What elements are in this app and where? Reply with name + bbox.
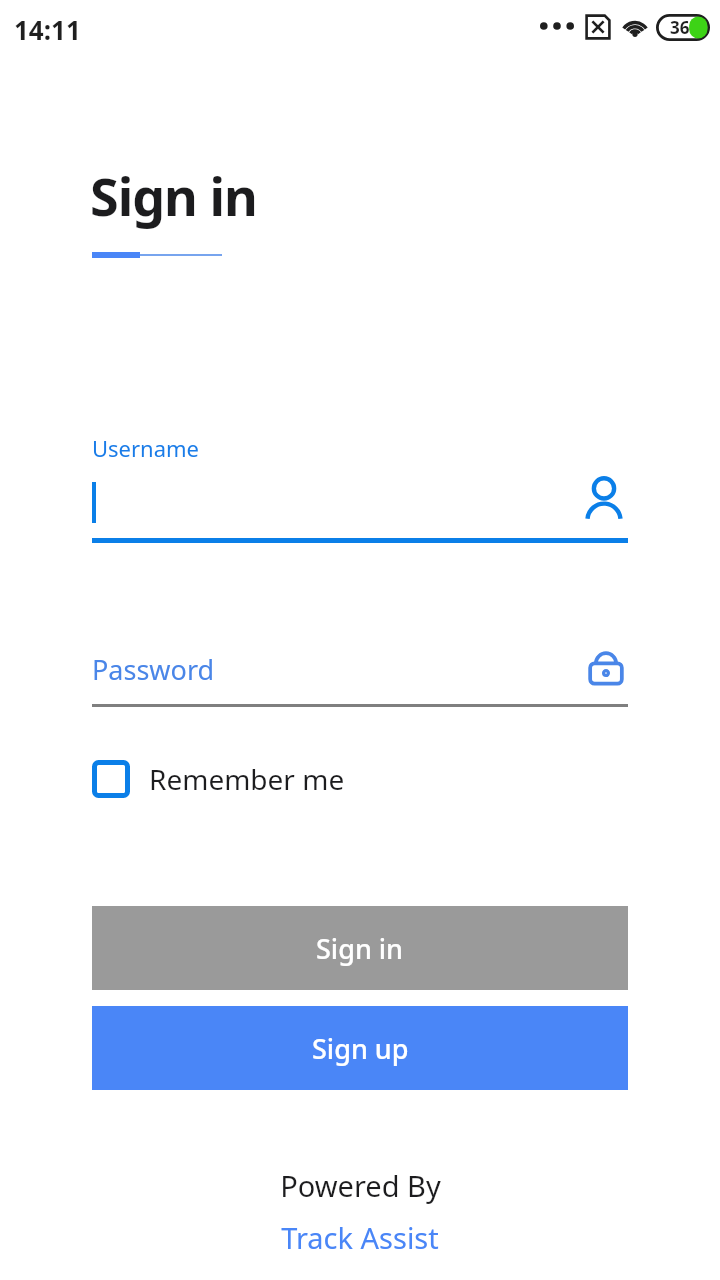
staticText: Remember me <box>149 760 345 798</box>
staticText: 36 <box>670 16 690 39</box>
staticText: Sign up <box>312 1030 409 1067</box>
staticText: Password <box>92 651 215 688</box>
staticText: Username <box>92 433 200 463</box>
button[interactable]: Sign up <box>92 1006 628 1090</box>
staticText: Sign in <box>90 160 257 231</box>
button[interactable]: Track Assist <box>281 1218 439 1257</box>
staticText: 14:11 <box>14 12 81 47</box>
button[interactable]: Sign in <box>92 906 628 990</box>
button[interactable]: Password <box>582 642 630 690</box>
staticText: Powered By <box>280 1166 441 1205</box>
staticText: Sign in <box>316 930 404 967</box>
button[interactable]: Username <box>578 473 630 525</box>
button[interactable]: Remember me <box>92 760 345 798</box>
